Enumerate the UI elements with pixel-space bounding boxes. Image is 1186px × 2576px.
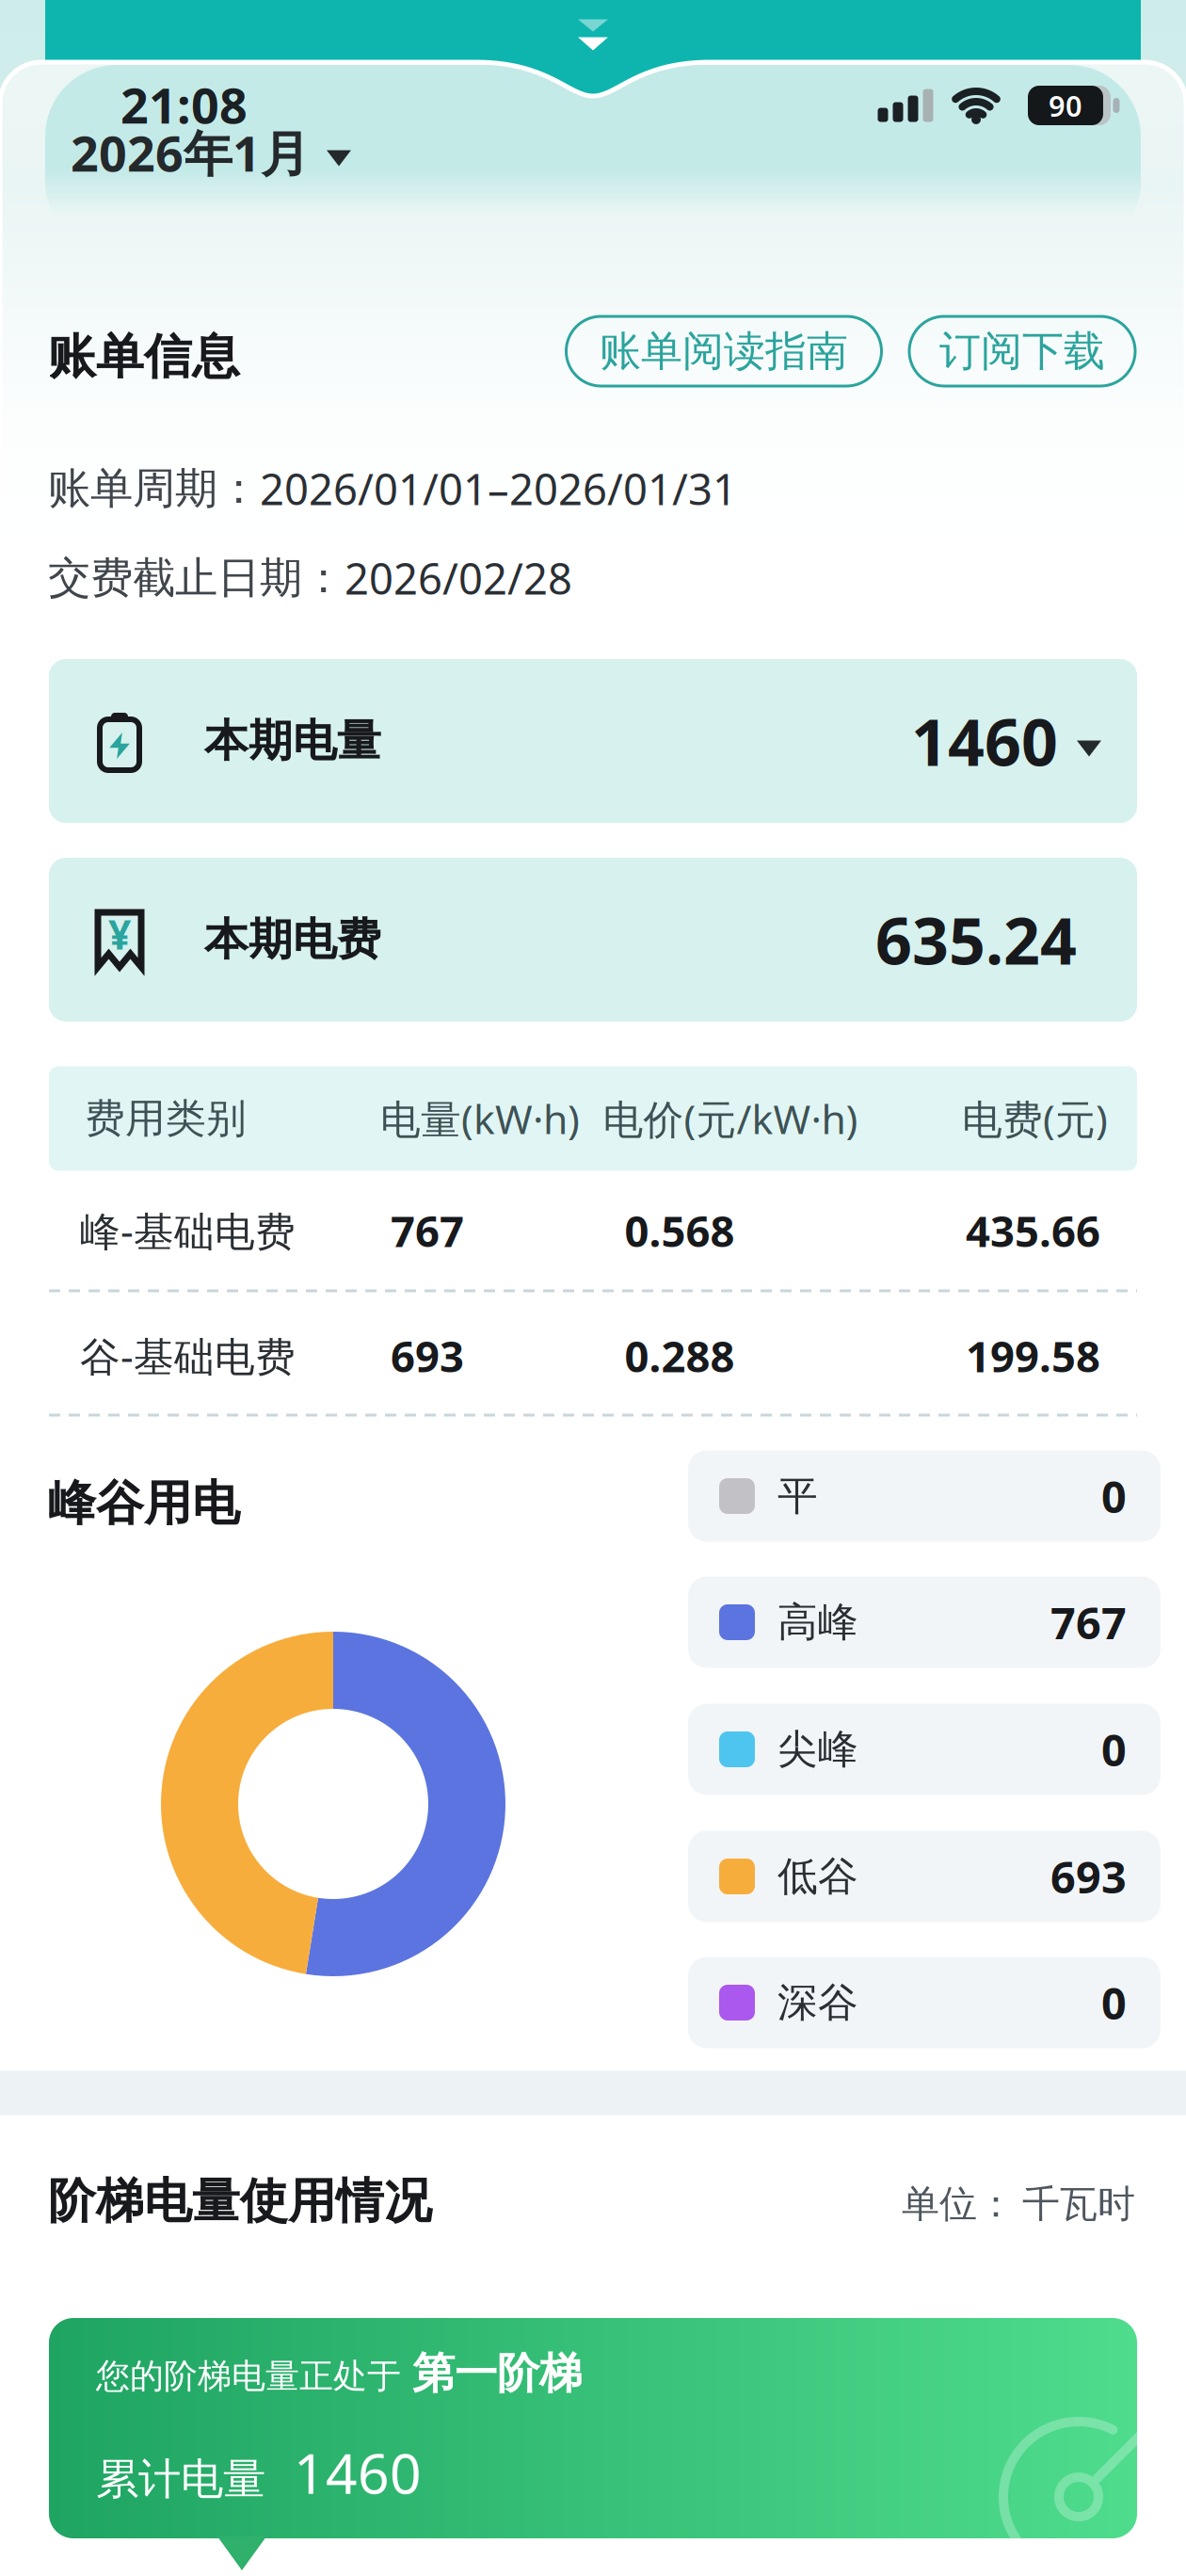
staticText: 0 bbox=[1101, 1973, 1127, 2032]
staticText: 订阅下载 bbox=[939, 326, 1105, 377]
staticText: 90 bbox=[1049, 86, 1082, 125]
staticText: 199.58 bbox=[966, 1327, 1100, 1384]
staticText: 693 bbox=[1050, 1847, 1127, 1906]
staticText: 谷-基础电费 bbox=[80, 1329, 296, 1383]
staticText: 767 bbox=[1050, 1593, 1127, 1651]
button[interactable]: 订阅下载 bbox=[909, 316, 1135, 386]
button[interactable]: 2026年1月 bbox=[71, 120, 351, 185]
staticText: 深谷 bbox=[777, 1978, 858, 2027]
staticText: 0.288 bbox=[625, 1327, 735, 1384]
staticText: 电量(kW·h) bbox=[380, 1092, 580, 1145]
staticText: 0.568 bbox=[625, 1202, 735, 1259]
button[interactable]: 下拉切换账单 bbox=[578, 19, 608, 50]
staticText: 账单阅读指南 bbox=[600, 326, 848, 377]
staticText: 账单信息 bbox=[48, 328, 240, 386]
staticText: 1460 bbox=[294, 2436, 422, 2509]
staticText: 峰-基础电费 bbox=[80, 1204, 296, 1257]
staticText: 峰谷用电 bbox=[48, 1474, 240, 1533]
staticText: 费用类别 bbox=[85, 1094, 247, 1143]
button[interactable]: 本期电量 bbox=[49, 659, 1137, 823]
staticText: 0 bbox=[1101, 1720, 1127, 1779]
staticText: 平 bbox=[777, 1471, 818, 1521]
staticText: 您的阶梯电量正处于 bbox=[96, 2355, 401, 2397]
staticText: 2026/02/28 bbox=[345, 550, 572, 606]
staticText: 767 bbox=[391, 1202, 464, 1259]
staticText: 2026年1月 bbox=[71, 120, 310, 185]
staticText: 尖峰 bbox=[777, 1725, 858, 1774]
staticText: ¥ bbox=[108, 907, 131, 961]
staticText: 电价(元/kW·h) bbox=[603, 1092, 858, 1145]
button[interactable]: 账单阅读指南 bbox=[566, 316, 881, 386]
staticText: 1460 bbox=[911, 698, 1058, 783]
staticText: 电费(元) bbox=[962, 1092, 1108, 1145]
staticText: 账单周期： bbox=[48, 462, 260, 515]
staticText: 21:08 bbox=[120, 72, 248, 137]
staticText: 693 bbox=[391, 1327, 464, 1384]
staticText: 高峰 bbox=[777, 1598, 858, 1647]
staticText: 交费截止日期： bbox=[48, 552, 345, 604]
staticText: 2026/01/01–2026/01/31 bbox=[260, 460, 737, 517]
staticText: 435.66 bbox=[966, 1202, 1100, 1259]
staticText: 0 bbox=[1101, 1467, 1127, 1525]
staticText: 635.24 bbox=[875, 897, 1077, 982]
staticText: 第一阶梯 bbox=[412, 2347, 582, 2400]
staticText: 低谷 bbox=[777, 1852, 858, 1901]
staticText: 千瓦时 bbox=[1022, 2181, 1135, 2227]
staticText: 阶梯电量使用情况 bbox=[48, 2172, 432, 2231]
staticText: 单位： bbox=[902, 2181, 1015, 2227]
staticText: 本期电量 bbox=[204, 714, 381, 768]
staticText: 累计电量 bbox=[96, 2453, 265, 2505]
staticText: 本期电费 bbox=[204, 913, 381, 967]
